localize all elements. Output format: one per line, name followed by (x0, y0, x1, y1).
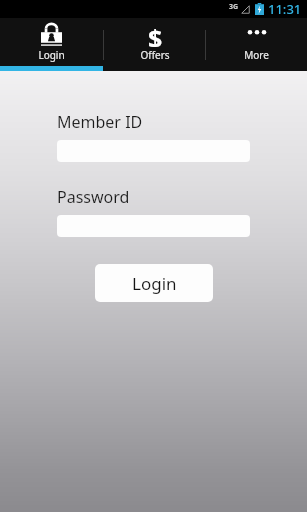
staticText: 3G (229, 2, 239, 12)
other: Offers (143, 21, 167, 47)
other: Login (41, 23, 62, 46)
button[interactable]: Login (95, 264, 213, 302)
button[interactable]: Offers (104, 18, 205, 71)
staticText: Login (38, 48, 65, 62)
button[interactable]: More (206, 18, 307, 71)
staticText: Member ID (57, 111, 143, 133)
staticText: Password (57, 186, 130, 208)
staticText: More (244, 48, 269, 62)
staticText: Offers (140, 48, 170, 62)
staticText: 11:31 (268, 0, 302, 18)
staticText: $ (148, 21, 163, 47)
other: More (244, 23, 270, 45)
button[interactable]: Login (0, 18, 103, 71)
staticText: Login (132, 272, 177, 295)
